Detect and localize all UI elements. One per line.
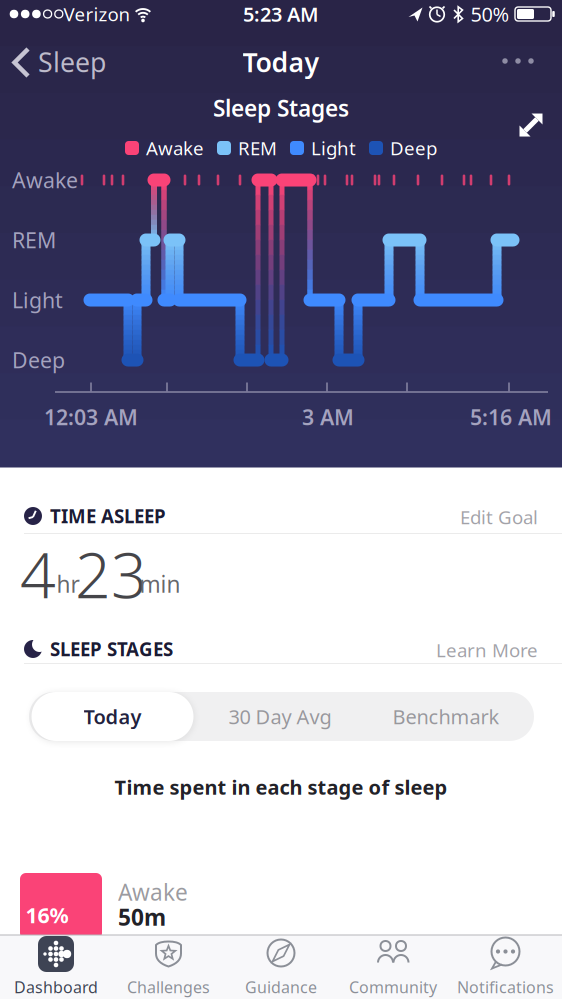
staticText: TIME ASLEEP bbox=[50, 504, 166, 528]
staticText: REM bbox=[12, 226, 56, 254]
staticText: Community bbox=[349, 976, 437, 998]
button[interactable] bbox=[496, 36, 540, 86]
staticText: 5:23 AM bbox=[243, 1, 319, 27]
staticText: REM bbox=[238, 136, 277, 160]
staticText: Dashboard bbox=[14, 976, 98, 998]
staticText: 50m bbox=[118, 902, 166, 932]
button[interactable]: Challenges bbox=[112, 935, 224, 999]
button[interactable]: Community bbox=[337, 935, 449, 999]
staticText: hr bbox=[56, 569, 79, 599]
button[interactable]: Guidance bbox=[225, 935, 337, 999]
staticText: Today bbox=[83, 703, 141, 730]
staticText: Guidance bbox=[245, 976, 317, 998]
staticText: Learn More bbox=[436, 638, 538, 662]
staticText: Light bbox=[12, 286, 63, 314]
staticText: Light bbox=[311, 136, 356, 160]
button[interactable]: Sleep bbox=[0, 37, 120, 87]
staticText: 3 AM bbox=[302, 403, 354, 431]
staticText: Deep bbox=[390, 136, 437, 160]
staticText: Sleep bbox=[38, 44, 106, 80]
button[interactable]: Edit Goal bbox=[418, 505, 538, 529]
staticText: Benchmark bbox=[392, 703, 499, 730]
staticText: min bbox=[139, 569, 180, 599]
staticText: Awake bbox=[12, 166, 78, 194]
staticText: 12:03 AM bbox=[44, 403, 138, 431]
staticText: 16% bbox=[25, 901, 68, 929]
staticText: Edit Goal bbox=[460, 505, 538, 529]
staticText: Challenges bbox=[127, 976, 210, 998]
button[interactable]: Learn More bbox=[408, 638, 538, 662]
staticText: Awake bbox=[118, 877, 188, 907]
staticText: 23 bbox=[75, 532, 147, 616]
staticText: Time spent in each stage of sleep bbox=[114, 774, 447, 800]
staticText: 4 bbox=[20, 532, 56, 616]
staticText: Awake bbox=[146, 136, 204, 160]
staticText: 5:16 AM bbox=[470, 403, 552, 431]
staticText: Sleep Stages bbox=[213, 93, 349, 123]
staticText: SLEEP STAGES bbox=[50, 637, 173, 661]
button[interactable] bbox=[509, 103, 553, 147]
staticText: Today bbox=[242, 44, 319, 80]
staticText: Verizon bbox=[63, 2, 130, 26]
button[interactable]: Notifications bbox=[449, 935, 561, 999]
staticText: 30 Day Avg bbox=[228, 703, 331, 730]
staticText: 50% bbox=[470, 1, 509, 27]
button[interactable]: Dashboard bbox=[0, 935, 112, 999]
staticText: Deep bbox=[12, 346, 65, 374]
button[interactable]: 30 Day Avg bbox=[200, 692, 360, 741]
button[interactable]: Today bbox=[31, 692, 193, 741]
button[interactable]: Benchmark bbox=[366, 692, 526, 741]
staticText: Notifications bbox=[457, 976, 554, 998]
